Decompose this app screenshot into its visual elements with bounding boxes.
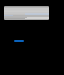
button[interactable]: Continue [14, 40, 24, 42]
button[interactable] [4, 6, 49, 20]
